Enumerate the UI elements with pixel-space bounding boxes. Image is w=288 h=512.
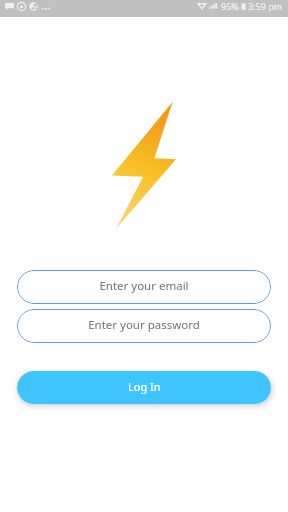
staticText: 95% xyxy=(221,0,239,12)
staticText: Enter your email xyxy=(99,278,189,294)
button[interactable]: Log In xyxy=(17,371,271,404)
staticText: Log In xyxy=(128,379,161,394)
staticText: 3:59 pm xyxy=(248,0,283,12)
other: App logo xyxy=(112,102,176,229)
staticText: Enter your password xyxy=(88,317,200,333)
button[interactable]: Enter your email xyxy=(17,270,271,304)
button[interactable]: Enter your password xyxy=(17,309,271,343)
